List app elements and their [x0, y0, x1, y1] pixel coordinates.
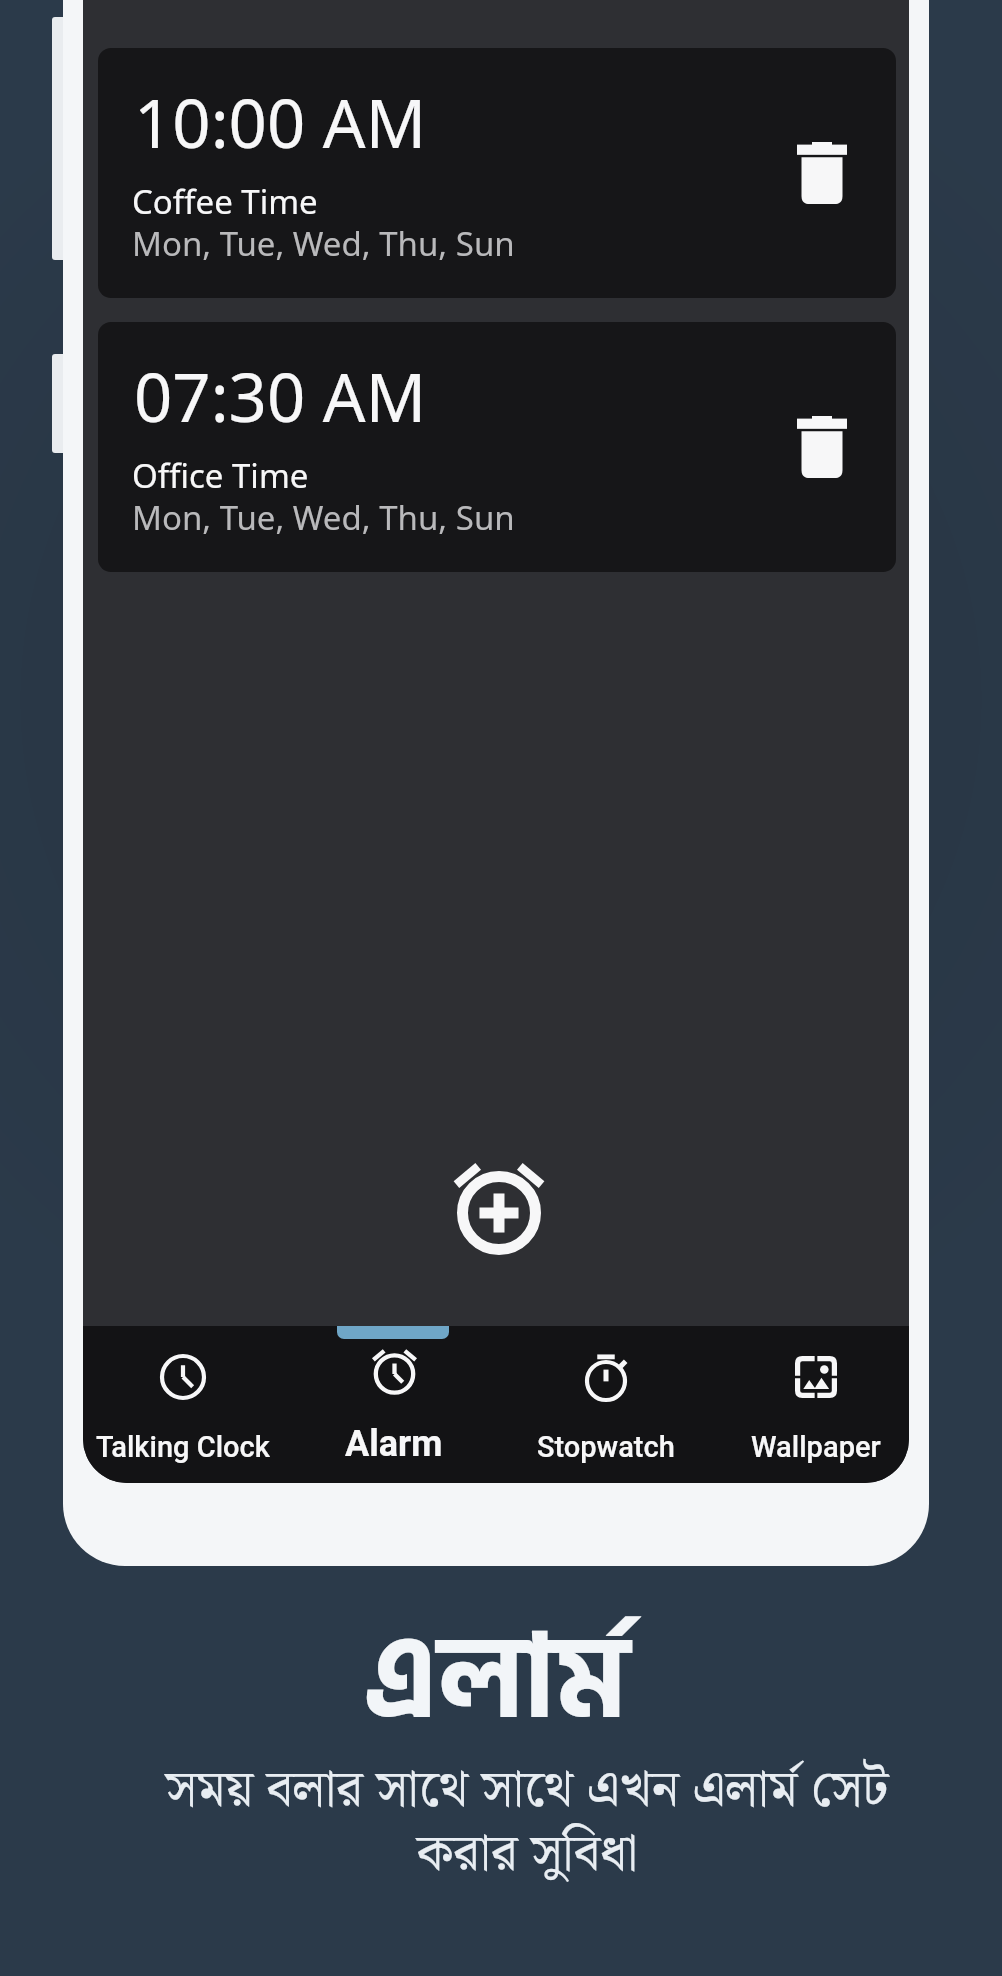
staticText: Coffee Time [132, 179, 318, 224]
staticText: এলার্ম [0, 1590, 997, 1774]
staticText: Office Time [132, 453, 309, 498]
staticText: 07:30 AM [134, 350, 427, 441]
button[interactable]: Stopwatch [500, 1326, 711, 1483]
staticText: Mon, Tue, Wed, Thu, Sun [132, 221, 515, 266]
staticText: Mon, Tue, Wed, Thu, Sun [132, 495, 515, 540]
button[interactable]: Wallpaper [710, 1326, 909, 1483]
button[interactable]: Delete alarm [788, 139, 856, 207]
button[interactable]: 10:00 AM [98, 48, 896, 298]
staticText: Talking Clock [96, 1430, 270, 1464]
staticText: Wallpaper [751, 1430, 881, 1464]
staticText: Alarm [345, 1423, 443, 1465]
button[interactable]: Alarm [288, 1326, 499, 1483]
staticText: 10:00 AM [134, 76, 427, 167]
button[interactable]: Add alarm [439, 1153, 559, 1273]
button[interactable]: 07:30 AM [98, 322, 896, 572]
staticText: সময় বলার সাথে সাথে এখন এলার্ম সেট করার … [26, 1749, 1002, 1896]
button[interactable]: Talking Clock [83, 1326, 288, 1483]
staticText: Stopwatch [537, 1430, 675, 1464]
button[interactable]: Delete alarm [788, 413, 856, 481]
